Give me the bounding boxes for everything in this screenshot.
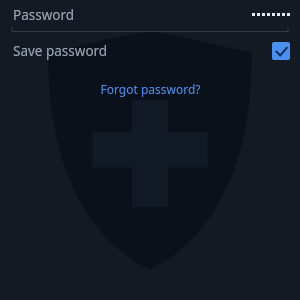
button[interactable]: Save password bbox=[0, 37, 300, 65]
button[interactable]: Password bbox=[0, 0, 300, 31]
staticText: Password bbox=[13, 6, 75, 24]
staticText: Save password bbox=[13, 42, 108, 60]
staticText: Forgot password? bbox=[100, 81, 201, 97]
button[interactable]: Forgot password? bbox=[92, 78, 209, 100]
button[interactable]: Save password bbox=[272, 42, 290, 60]
